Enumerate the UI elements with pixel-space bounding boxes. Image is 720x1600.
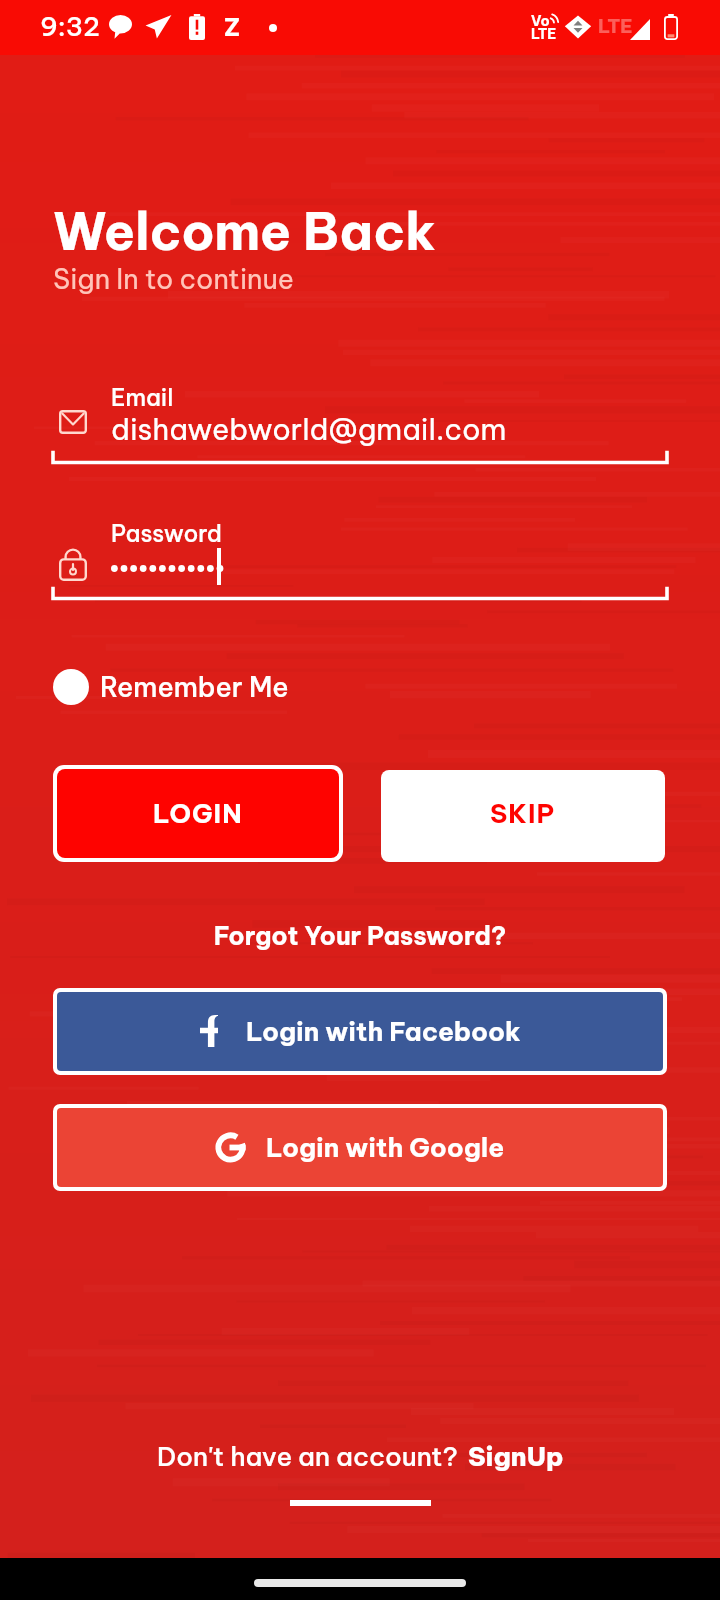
button[interactable]: SignUp bbox=[468, 1440, 564, 1473]
staticText: dishawebworld@gmail.com bbox=[111, 411, 507, 448]
staticText: Login with Google bbox=[266, 1131, 505, 1164]
staticText: Welcome Back bbox=[53, 199, 436, 264]
button[interactable]: Forgot Your Password? bbox=[0, 920, 720, 952]
staticText: Remember Me bbox=[100, 670, 289, 704]
other: Password bbox=[59, 548, 87, 581]
staticText: Sign In to continue bbox=[53, 262, 294, 296]
button[interactable]: Login with Google bbox=[57, 1108, 663, 1187]
staticText: Login with Facebook bbox=[246, 1015, 521, 1048]
staticText: SKIP bbox=[490, 797, 556, 830]
staticText: LOGIN bbox=[153, 797, 243, 830]
other: Email bbox=[59, 410, 87, 434]
staticText: LTE bbox=[598, 14, 633, 38]
staticText: 9:32 bbox=[40, 10, 101, 43]
staticText: Don't have an account? bbox=[157, 1440, 458, 1473]
button[interactable]: SKIP bbox=[381, 770, 665, 862]
staticText: LTE bbox=[531, 25, 557, 43]
staticText: Email bbox=[111, 383, 174, 412]
staticText: Vo bbox=[531, 12, 550, 30]
button[interactable]: LOGIN bbox=[57, 769, 339, 858]
staticText: Password bbox=[111, 519, 222, 548]
button[interactable]: Login with Facebook bbox=[57, 992, 663, 1071]
button[interactable]: Remember Me bbox=[53, 669, 289, 705]
staticText: Z bbox=[224, 12, 241, 42]
